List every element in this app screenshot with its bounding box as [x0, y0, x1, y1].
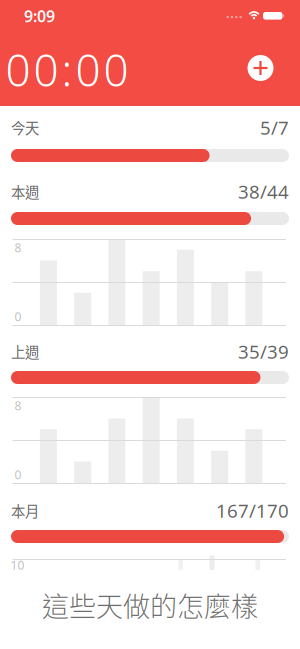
staticText: 本月 — [11, 500, 39, 521]
staticText: 8 — [14, 397, 21, 413]
staticText: 這些天做的怎麼樣 — [42, 585, 258, 625]
staticText: 0 — [14, 466, 21, 482]
staticText: 167/170 — [216, 498, 289, 523]
staticText: 10 — [10, 557, 24, 573]
staticText: 00:00 — [5, 40, 128, 99]
staticText: 9:09 — [24, 5, 55, 27]
staticText: 0 — [14, 308, 21, 324]
staticText: 35/39 — [238, 339, 289, 364]
staticText: 38/44 — [238, 179, 289, 204]
staticText: 今天 — [11, 117, 39, 138]
staticText: 上週 — [11, 341, 39, 362]
staticText: 5/7 — [260, 115, 289, 140]
staticText: 8 — [14, 239, 21, 255]
button[interactable]: Add — [247, 55, 273, 81]
staticText: 本週 — [11, 181, 39, 202]
